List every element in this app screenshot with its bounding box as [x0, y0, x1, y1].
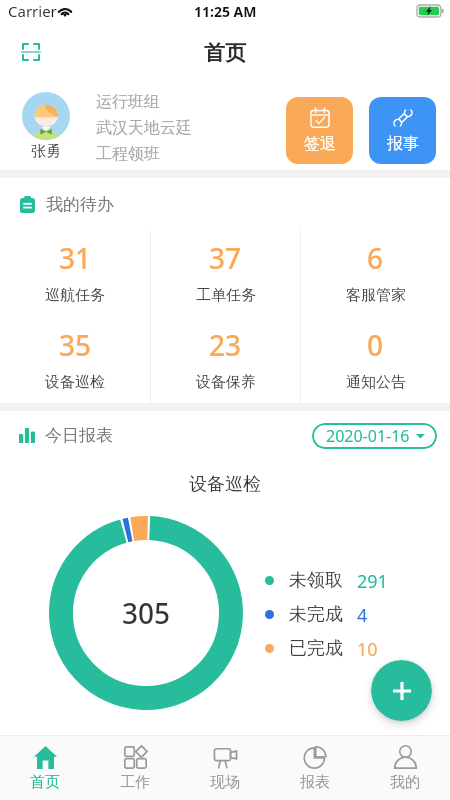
staticText: 工程领班: [96, 144, 160, 164]
staticText: 报表: [300, 773, 330, 792]
button[interactable]: 现场: [180, 736, 270, 800]
button[interactable]: 6: [301, 230, 450, 316]
staticText: 设备保养: [196, 373, 256, 392]
staticText: 4: [357, 603, 368, 625]
staticText: 10: [357, 637, 378, 659]
staticText: Carrier: [8, 1, 57, 21]
staticText: 巡航任务: [45, 286, 105, 305]
staticText: 运行班组: [96, 92, 160, 112]
staticText: 23: [209, 326, 242, 364]
staticText: 我的待办: [46, 194, 114, 215]
staticText: 签退: [304, 134, 336, 154]
button[interactable]: 工作: [90, 736, 180, 800]
staticText: 291: [357, 569, 388, 591]
staticText: 11:25 AM: [194, 2, 257, 21]
staticText: 305: [122, 594, 171, 632]
staticText: 设备巡检: [45, 373, 105, 392]
staticText: 武汉天地云廷: [96, 118, 192, 138]
staticText: 6: [367, 239, 384, 277]
staticText: 现场: [210, 773, 240, 792]
staticText: 通知公告: [346, 373, 406, 392]
button[interactable]: Add: [371, 660, 432, 721]
staticText: 我的: [390, 773, 420, 792]
button[interactable]: 报表: [270, 736, 360, 800]
staticText: 设备巡检: [0, 473, 450, 496]
button[interactable]: 37: [151, 230, 300, 316]
button[interactable]: 23: [151, 316, 300, 403]
staticText: 今日报表: [45, 425, 113, 446]
button[interactable]: 0: [301, 316, 450, 403]
staticText: 客服管家: [346, 286, 406, 305]
staticText: 工单任务: [196, 286, 256, 305]
staticText: 未完成: [289, 603, 343, 625]
staticText: 工作: [120, 773, 150, 792]
staticText: 35: [59, 326, 92, 364]
button[interactable]: 签退: [286, 97, 353, 164]
button[interactable]: 首页: [0, 736, 90, 800]
button[interactable]: 报事: [369, 97, 436, 164]
staticText: 已完成: [289, 637, 343, 659]
staticText: 张勇: [31, 142, 61, 161]
staticText: 37: [209, 239, 242, 277]
staticText: 未领取: [289, 569, 343, 591]
staticText: 首页: [204, 40, 246, 66]
staticText: 首页: [30, 773, 60, 792]
staticText: 0: [367, 326, 384, 364]
button[interactable]: 2020-01-16: [312, 423, 437, 449]
staticText: 报事: [387, 134, 419, 154]
button[interactable]: 31: [0, 230, 150, 316]
staticText: 31: [59, 239, 92, 277]
button[interactable]: Scan: [10, 31, 52, 73]
button[interactable]: 我的: [360, 736, 450, 800]
button[interactable]: 35: [0, 316, 150, 403]
staticText: 2020-01-16: [326, 425, 410, 447]
